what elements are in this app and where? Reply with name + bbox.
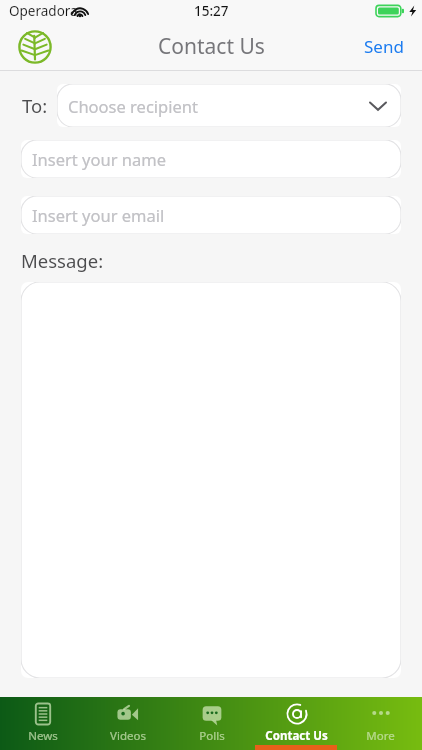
- button[interactable]: Contact Us: [254, 697, 338, 750]
- button[interactable]: App logo: [18, 30, 52, 64]
- staticText: 15:27: [194, 2, 229, 20]
- staticText: More: [366, 728, 395, 744]
- staticText: Insert your name: [32, 148, 166, 170]
- staticText: Message:: [21, 248, 104, 273]
- button[interactable]: Videos: [85, 697, 170, 750]
- staticText: Operadora: [9, 2, 78, 20]
- staticText: Videos: [110, 728, 146, 744]
- staticText: Choose recipient: [68, 95, 198, 117]
- staticText: Send: [364, 35, 404, 58]
- button[interactable]: Choose recipient: [57, 84, 401, 127]
- button[interactable]: News: [0, 697, 85, 750]
- staticText: Contact Us: [158, 32, 265, 61]
- staticText: News: [28, 728, 58, 744]
- staticText: Contact Us: [265, 728, 328, 744]
- button[interactable]: Insert your name: [21, 140, 401, 178]
- button[interactable]: More: [338, 697, 422, 750]
- button[interactable]: Insert your email: [21, 196, 401, 234]
- staticText: To:: [22, 93, 48, 118]
- button[interactable]: Polls: [170, 697, 254, 750]
- button[interactable]: Send: [346, 25, 422, 68]
- staticText: Polls: [199, 728, 225, 744]
- staticText: Insert your email: [32, 204, 165, 226]
